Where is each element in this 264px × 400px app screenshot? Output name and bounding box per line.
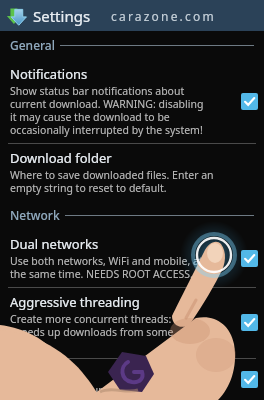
button[interactable]: Dual networks [0, 230, 264, 287]
staticText: Aggressive threading [10, 293, 140, 311]
button[interactable]: Toggle Dual networks [241, 250, 258, 267]
staticText: Download folder [10, 149, 112, 167]
staticText: Network [10, 207, 60, 223]
staticText: General [10, 37, 55, 53]
button[interactable]: Big chunks [0, 359, 264, 400]
staticText: Big chunks [10, 364, 77, 382]
button[interactable]: Toggle Aggressive threading [241, 314, 258, 331]
button[interactable]: Toggle Big chunks [241, 371, 258, 388]
staticText: Use both networks, WiFi and mobile, at t… [10, 254, 206, 281]
staticText: Create more concurrent threads: speeds u… [10, 312, 206, 352]
staticText: Notifications [10, 65, 88, 83]
button[interactable]: Download folder [0, 144, 264, 201]
button[interactable]: Notifications [0, 60, 264, 143]
button[interactable]: Aggressive threading [0, 288, 264, 358]
staticText: Settings [33, 6, 91, 26]
staticText: Where to save downloaded files. Enter an… [10, 168, 238, 195]
button[interactable]: App icon [6, 5, 28, 27]
button[interactable]: Toggle Notifications [241, 93, 258, 110]
staticText: Use big transfer units: should help on f… [10, 383, 206, 394]
staticText: Dual networks [10, 235, 99, 253]
staticText: carazone.com [111, 8, 216, 24]
staticText: Show status bar notifications about curr… [10, 84, 206, 137]
